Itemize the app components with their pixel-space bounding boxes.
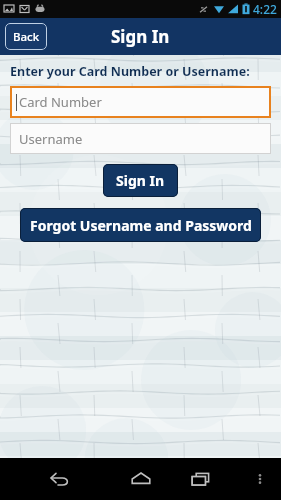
button[interactable]: Forgot Username and Password [20, 208, 261, 242]
button[interactable]: Card Number [10, 86, 271, 118]
staticText: Card Number [19, 93, 102, 111]
button[interactable]: Sign In [103, 164, 178, 197]
staticText: Username [19, 130, 83, 148]
button[interactable]: More options [245, 464, 275, 494]
button[interactable]: Back [42, 461, 78, 497]
staticText: 4:22 [253, 1, 277, 17]
staticText: Enter your Card Number or Username: [10, 63, 250, 80]
staticText: Forgot Username and Password [30, 216, 252, 235]
button[interactable]: Back [5, 23, 47, 50]
staticText: Back [13, 29, 40, 45]
staticText: Sign In [111, 25, 170, 48]
button[interactable]: Username [10, 123, 271, 154]
staticText: Sign In [116, 171, 165, 190]
button[interactable]: Home [123, 461, 159, 497]
button[interactable]: Recent apps [183, 461, 219, 497]
